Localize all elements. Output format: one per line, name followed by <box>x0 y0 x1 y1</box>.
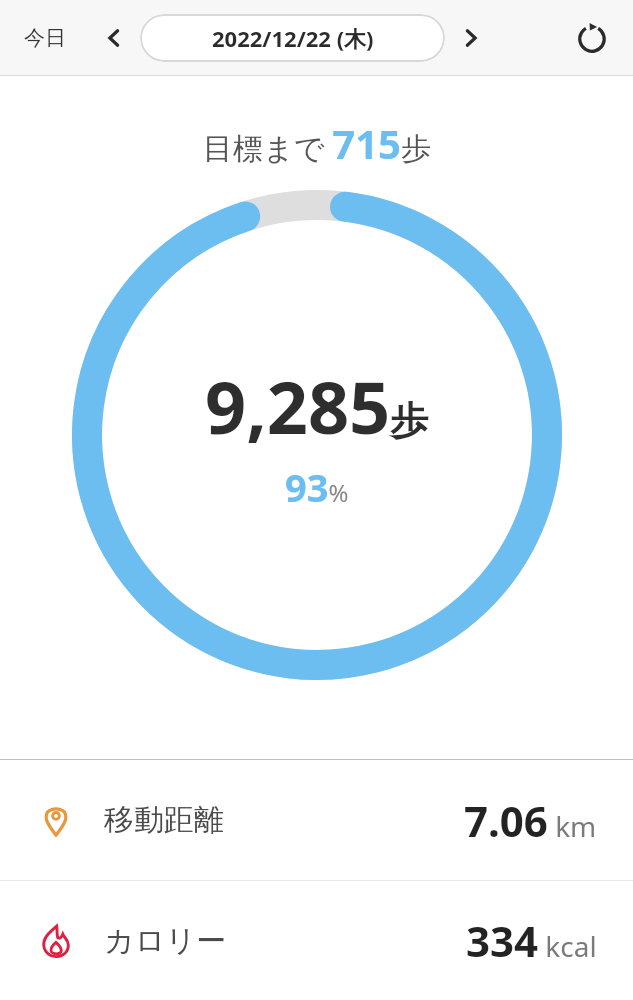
button[interactable]: 移動距離 <box>0 760 633 880</box>
staticText: 2022/12/22 (木) <box>212 23 374 53</box>
button[interactable]: カロリー <box>0 881 633 1000</box>
button[interactable]: Previous day <box>94 18 134 58</box>
button[interactable]: Next day <box>451 18 491 58</box>
staticText: 9,285歩 <box>205 357 429 455</box>
button[interactable]: 2022/12/22 (木) <box>140 14 445 62</box>
button[interactable]: 今日 <box>18 19 72 57</box>
staticText: 目標まで 715歩 <box>203 116 431 170</box>
staticText: 今日 <box>24 25 66 51</box>
staticText: カロリー <box>104 922 227 960</box>
staticText: 移動距離 <box>104 801 224 839</box>
staticText: 334 kcal <box>466 912 597 969</box>
staticText: 7.06 km <box>464 792 597 849</box>
staticText: 93% <box>285 461 349 513</box>
button[interactable]: Refresh <box>569 15 615 61</box>
